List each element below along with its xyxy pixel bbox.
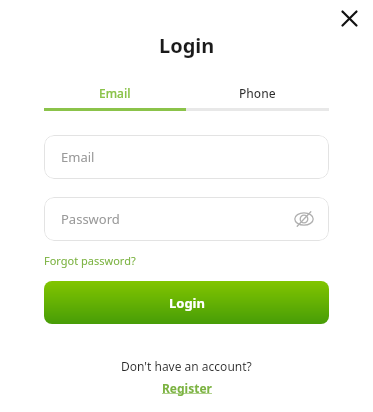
button[interactable]: Toggle password visibility: [291, 206, 317, 232]
button[interactable]: Email: [44, 135, 329, 179]
button[interactable]: Email: [44, 85, 186, 101]
button[interactable]: Phone: [186, 85, 329, 101]
staticText: Login: [169, 294, 205, 312]
staticText: Email: [99, 85, 131, 101]
staticText: Don't have an account?: [121, 358, 252, 374]
staticText: Login: [159, 32, 215, 59]
button[interactable]: Forgot password?: [44, 253, 136, 268]
staticText: Email: [61, 148, 95, 166]
button[interactable]: Login: [44, 281, 329, 324]
staticText: Phone: [239, 85, 276, 101]
button[interactable]: Register: [162, 380, 212, 396]
button[interactable]: Close: [333, 2, 365, 34]
button[interactable]: Password: [44, 197, 329, 241]
staticText: Forgot password?: [44, 253, 136, 268]
staticText: Register: [162, 380, 212, 396]
staticText: Password: [61, 210, 120, 228]
